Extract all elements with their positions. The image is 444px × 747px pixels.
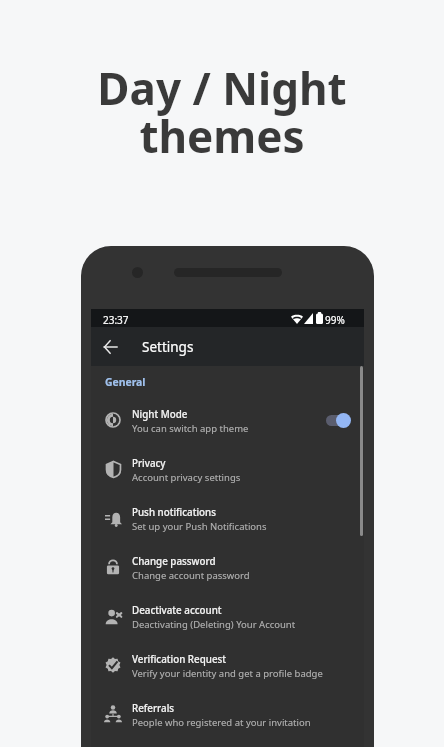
staticText: Set up your Push Notifications: [132, 520, 267, 533]
staticText: Deactivate account: [132, 604, 222, 617]
button[interactable]: Verification Request: [91, 638, 364, 687]
staticText: People who registered at your invitation: [132, 716, 311, 729]
staticText: Referrals: [132, 702, 175, 715]
button[interactable]: Privacy: [91, 442, 364, 491]
staticText: 99%: [325, 313, 345, 327]
staticText: Deactivating (Deleting) Your Account: [132, 618, 296, 631]
staticText: 23:37: [103, 313, 129, 327]
staticText: Privacy: [132, 457, 166, 470]
staticText: Day / Night: [97, 58, 347, 118]
staticText: themes: [139, 106, 305, 166]
button[interactable]: Back: [97, 333, 124, 360]
staticText: Night Mode: [132, 408, 188, 421]
staticText: Account privacy settings: [132, 471, 241, 484]
staticText: Change account password: [132, 569, 250, 582]
button[interactable]: Night Mode: [91, 393, 364, 442]
button[interactable]: Change password: [91, 540, 364, 589]
staticText: General: [105, 375, 146, 389]
staticText: Push notifications: [132, 506, 216, 519]
button[interactable]: Referrals: [91, 687, 364, 736]
button[interactable]: Deactivate account: [91, 589, 364, 638]
staticText: Settings: [142, 338, 194, 356]
button[interactable]: Push notifications: [91, 491, 364, 540]
staticText: Verify your identity and get a profile b…: [132, 667, 323, 680]
staticText: Verification Request: [132, 653, 227, 666]
staticText: You can switch app theme: [132, 422, 249, 435]
button[interactable]: Night mode toggle: [326, 412, 354, 428]
staticText: Change password: [132, 555, 216, 568]
